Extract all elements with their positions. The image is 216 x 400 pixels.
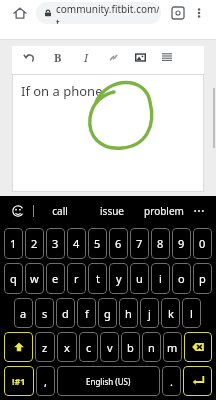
staticText: 9	[178, 236, 185, 251]
staticText: v	[107, 340, 113, 355]
staticText: 8	[157, 236, 164, 251]
button[interactable]: t	[88, 263, 107, 294]
staticText: English (US)	[86, 376, 131, 387]
button[interactable]: Emoji	[8, 201, 28, 221]
button[interactable]: 8	[151, 228, 170, 259]
button[interactable]: e	[46, 263, 65, 294]
staticText: t	[96, 271, 100, 286]
button[interactable]: 1	[4, 228, 23, 259]
button[interactable]: h	[119, 298, 138, 328]
staticText: 4	[73, 236, 80, 251]
button[interactable]: Backspace	[184, 332, 212, 362]
button[interactable]: 3	[46, 228, 65, 259]
staticText: l	[190, 306, 193, 321]
staticText: n	[148, 340, 155, 355]
staticText: ,	[44, 374, 47, 389]
button[interactable]: Tabs	[167, 2, 189, 24]
button[interactable]: 2	[25, 228, 44, 259]
staticText: k	[168, 306, 174, 321]
button[interactable]: z	[35, 332, 55, 362]
button[interactable]: o	[172, 263, 191, 294]
button[interactable]: g	[98, 298, 117, 328]
staticText: call	[52, 204, 68, 218]
button[interactable]: f	[77, 298, 96, 328]
button[interactable]: .	[162, 366, 181, 396]
button[interactable]: i	[151, 263, 170, 294]
button[interactable]: w	[25, 263, 44, 294]
staticText: community.fitbit.com/t	[56, 2, 161, 24]
button[interactable]: u	[130, 263, 149, 294]
button[interactable]: d	[56, 298, 75, 328]
button[interactable]: call	[34, 196, 86, 226]
staticText: y	[116, 271, 122, 286]
staticText: problem	[144, 204, 184, 218]
button[interactable]: v	[100, 332, 119, 362]
staticText: f	[85, 306, 89, 321]
button[interactable]: 9	[172, 228, 191, 259]
button[interactable]: 4	[67, 228, 86, 259]
staticText: B	[54, 50, 62, 65]
button[interactable]: a	[14, 298, 33, 328]
button[interactable]: c	[79, 332, 98, 362]
staticText: m	[167, 340, 178, 355]
button[interactable]: y	[109, 263, 128, 294]
button[interactable]: problem	[138, 196, 190, 226]
button[interactable]: k	[161, 298, 180, 328]
button[interactable]: Shift	[4, 332, 33, 362]
button[interactable]: Undo	[18, 46, 40, 68]
staticText: w	[30, 271, 39, 286]
button[interactable]: Enter	[183, 366, 212, 396]
button[interactable]: r	[67, 263, 86, 294]
button[interactable]: b	[121, 332, 140, 362]
staticText: 5	[94, 236, 101, 251]
staticText: 3	[52, 236, 59, 251]
button[interactable]: l	[182, 298, 201, 328]
button[interactable]: More options	[189, 3, 209, 23]
staticText: 2	[31, 236, 38, 251]
staticText: a	[20, 306, 27, 321]
staticText: b	[127, 340, 134, 355]
button[interactable]: Home	[7, 0, 33, 26]
staticText: x	[64, 340, 70, 355]
staticText: issue	[100, 204, 124, 218]
staticText: c	[86, 340, 92, 355]
button[interactable]: 7	[130, 228, 149, 259]
button[interactable]: !#1	[4, 366, 34, 396]
staticText: If on a phone	[21, 82, 103, 100]
staticText: !#1	[12, 375, 26, 387]
staticText: 7	[136, 236, 143, 251]
staticText: e	[52, 271, 59, 286]
button[interactable]: 6	[109, 228, 128, 259]
staticText: d	[62, 306, 69, 321]
button[interactable]: ,	[36, 366, 55, 396]
button[interactable]: p	[193, 263, 212, 294]
button[interactable]: English (US)	[57, 366, 160, 396]
staticText: p	[199, 271, 206, 286]
button[interactable]: More suggestions	[190, 202, 208, 220]
button[interactable]: 5	[88, 228, 107, 259]
button[interactable]: Insert image	[130, 47, 150, 67]
button[interactable]: q	[4, 263, 23, 294]
button[interactable]: x	[57, 332, 77, 362]
staticText: q	[10, 271, 17, 286]
staticText: z	[42, 340, 48, 355]
button[interactable]: m	[163, 332, 182, 362]
button[interactable]: B	[48, 47, 68, 67]
staticText: 6	[115, 236, 122, 251]
staticText: o	[178, 271, 185, 286]
staticText: g	[104, 306, 111, 321]
button[interactable]: community.fitbit.com/t	[36, 2, 161, 24]
button[interactable]: issue	[86, 196, 138, 226]
button[interactable]: Insert link	[103, 47, 123, 67]
staticText: h	[125, 306, 132, 321]
button[interactable]: 0	[193, 228, 212, 259]
staticText: s	[42, 306, 48, 321]
button[interactable]: I	[76, 47, 96, 67]
staticText: .	[170, 374, 173, 389]
button[interactable]: List	[157, 47, 177, 67]
staticText: j	[148, 306, 151, 321]
button[interactable]: n	[142, 332, 161, 362]
staticText: 0	[199, 236, 206, 251]
button[interactable]: s	[35, 298, 54, 328]
button[interactable]: j	[140, 298, 159, 328]
